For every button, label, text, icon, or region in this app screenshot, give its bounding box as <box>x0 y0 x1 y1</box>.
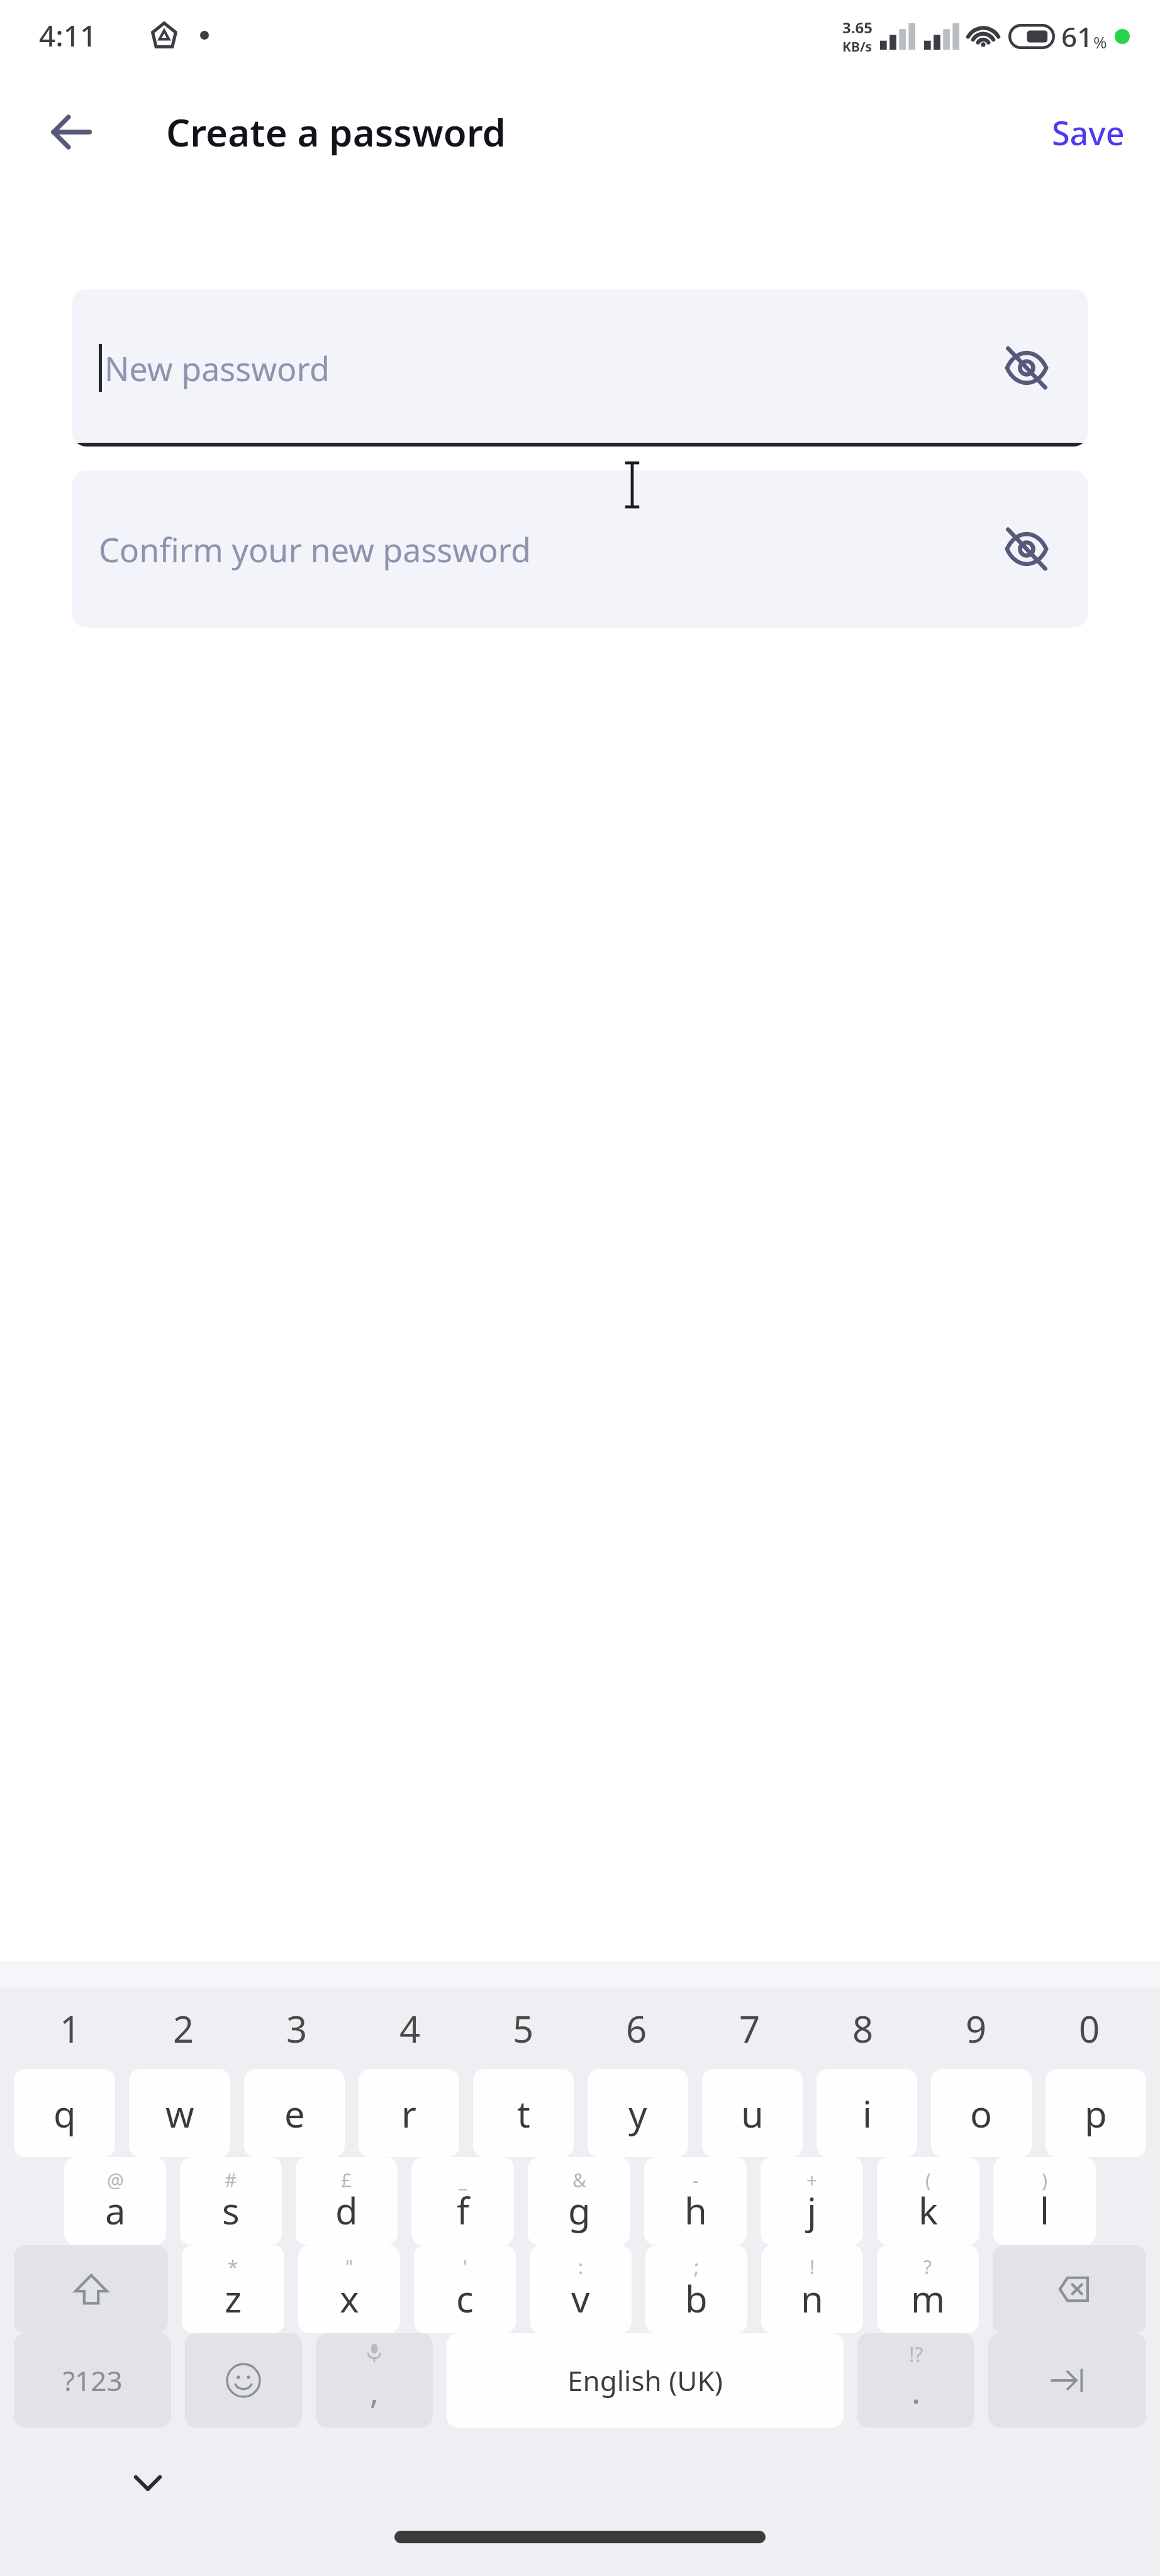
button[interactable]: 2 <box>127 1987 240 2069</box>
button[interactable]: Confirm your new password <box>72 470 1088 628</box>
staticText: & <box>572 2167 586 2193</box>
button[interactable]: ; <box>645 2245 747 2333</box>
button[interactable]: 9 <box>920 1987 1033 2069</box>
staticText: l <box>1040 2185 1049 2235</box>
button[interactable]: w <box>129 2069 230 2157</box>
button[interactable]: : <box>530 2245 632 2333</box>
staticText: ? <box>923 2254 932 2280</box>
staticText: Save <box>1052 110 1125 155</box>
staticText: New password <box>104 346 330 391</box>
staticText: # <box>225 2167 237 2193</box>
button[interactable]: Enter <box>988 2333 1146 2428</box>
staticText: 5 <box>513 2004 534 2053</box>
button[interactable]: p <box>1046 2069 1146 2157</box>
button[interactable]: & <box>528 2157 630 2245</box>
button[interactable]: Save <box>1034 99 1142 166</box>
button[interactable]: + <box>761 2157 863 2245</box>
button[interactable]: Backspace <box>993 2245 1146 2333</box>
button[interactable]: Back <box>36 97 106 167</box>
staticText: 0 <box>1079 2004 1100 2053</box>
staticText: h <box>684 2185 707 2235</box>
staticText: 4 <box>399 2004 421 2053</box>
button[interactable]: i <box>817 2069 917 2157</box>
staticText: ; <box>694 2254 700 2280</box>
staticText: c <box>456 2273 474 2323</box>
button[interactable]: t <box>473 2069 574 2157</box>
staticText: s <box>222 2185 240 2235</box>
button[interactable]: ? <box>877 2245 979 2333</box>
button[interactable]: q <box>14 2069 115 2157</box>
button[interactable]: # <box>180 2157 282 2245</box>
staticText: 7 <box>739 2004 761 2053</box>
staticText: e <box>284 2089 305 2138</box>
button[interactable]: 8 <box>806 1987 920 2069</box>
staticText: £ <box>341 2167 352 2193</box>
staticText: 3.65 <box>842 17 873 38</box>
button[interactable]: Shift <box>14 2245 168 2333</box>
staticText: t <box>517 2089 530 2138</box>
staticText: q <box>53 2089 76 2138</box>
staticText: @ <box>107 2167 124 2193</box>
button[interactable]: ) <box>993 2157 1096 2245</box>
button[interactable]: " <box>298 2245 400 2333</box>
button[interactable]: u <box>702 2069 803 2157</box>
staticText: ?123 <box>63 2362 123 2399</box>
button[interactable]: y <box>588 2069 688 2157</box>
button[interactable]: @ <box>64 2157 166 2245</box>
staticText: 8 <box>852 2004 874 2053</box>
staticText: b <box>685 2273 708 2323</box>
staticText: m <box>911 2273 945 2323</box>
staticText: - <box>693 2167 699 2193</box>
staticText: * <box>228 2254 238 2280</box>
staticText: j <box>807 2185 817 2235</box>
button[interactable]: 7 <box>693 1987 806 2069</box>
staticText: English (UK) <box>567 2362 723 2399</box>
button[interactable]: 1 <box>14 1987 127 2069</box>
staticText: z <box>225 2273 242 2323</box>
button[interactable]: - <box>644 2157 747 2245</box>
button[interactable]: ! <box>761 2245 863 2333</box>
button[interactable]: o <box>931 2069 1032 2157</box>
staticText: KB/s <box>842 38 873 56</box>
button[interactable]: Hide keyboard <box>113 2448 182 2517</box>
button[interactable]: ?123 <box>14 2333 171 2428</box>
button[interactable]: Show password <box>992 333 1061 402</box>
button[interactable]: 5 <box>467 1987 580 2069</box>
button[interactable]: r <box>359 2069 459 2157</box>
staticText: a <box>105 2185 126 2235</box>
button[interactable]: ( <box>877 2157 979 2245</box>
button[interactable]: e <box>244 2069 345 2157</box>
staticText: Confirm your new password <box>99 527 532 572</box>
staticText: Create a password <box>166 106 506 158</box>
button[interactable]: 0 <box>1033 1987 1146 2069</box>
staticText: n <box>801 2273 823 2323</box>
staticText: x <box>340 2273 359 2323</box>
button[interactable]: 6 <box>580 1987 693 2069</box>
button[interactable]: * <box>182 2245 284 2333</box>
button[interactable]: Emoji <box>185 2333 302 2428</box>
button[interactable]: 3 <box>240 1987 354 2069</box>
staticText: % <box>1093 31 1107 53</box>
staticText: p <box>1085 2089 1107 2138</box>
staticText: 2 <box>173 2004 194 2053</box>
button[interactable]: , <box>316 2333 433 2428</box>
button[interactable]: 4 <box>354 1987 467 2069</box>
button[interactable]: _ <box>411 2157 514 2245</box>
staticText: y <box>628 2089 647 2138</box>
staticText: r <box>401 2089 416 2138</box>
staticText: k <box>918 2185 938 2235</box>
button[interactable]: Show password <box>992 514 1061 584</box>
button[interactable]: £ <box>296 2157 398 2245</box>
staticText: o <box>970 2089 993 2138</box>
staticText: : <box>578 2254 584 2280</box>
button[interactable]: English (UK) <box>447 2333 844 2428</box>
button[interactable]: !? <box>857 2333 974 2428</box>
staticText: " <box>345 2254 354 2280</box>
staticText: _ <box>459 2167 467 2193</box>
staticText: u <box>741 2089 764 2138</box>
button[interactable]: ' <box>414 2245 516 2333</box>
staticText: !? <box>909 2341 923 2368</box>
button[interactable]: New password <box>72 289 1088 447</box>
staticText: g <box>568 2185 591 2235</box>
staticText: d <box>335 2185 358 2235</box>
